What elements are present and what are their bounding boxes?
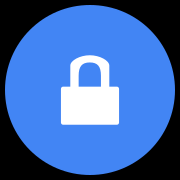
button[interactable]: Locked bbox=[5, 5, 175, 175]
